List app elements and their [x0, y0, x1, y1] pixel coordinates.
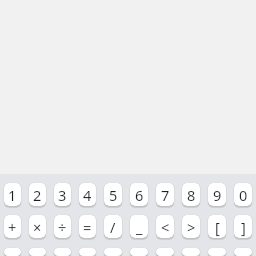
staticText: 5 [109, 185, 118, 205]
staticText: 7 [161, 185, 170, 205]
staticText: 6 [135, 185, 144, 205]
button[interactable] [208, 248, 226, 256]
staticText: ÷ [58, 217, 67, 237]
staticText: × [33, 217, 42, 237]
button[interactable] [182, 248, 200, 256]
button[interactable] [79, 248, 96, 256]
staticText: [ [215, 217, 220, 237]
button[interactable]: 3 [54, 183, 71, 206]
staticText: < [161, 217, 170, 237]
button[interactable]: 1 [4, 183, 21, 206]
button[interactable] [54, 248, 71, 256]
button[interactable] [234, 248, 252, 256]
button[interactable]: 9 [208, 183, 226, 206]
button[interactable]: ÷ [54, 215, 71, 238]
button[interactable] [29, 248, 46, 256]
button[interactable]: [ [208, 215, 226, 238]
staticText: 0 [239, 185, 248, 205]
button[interactable]: 5 [104, 183, 122, 206]
staticText: 9 [213, 185, 222, 205]
button[interactable]: 4 [79, 183, 96, 206]
button[interactable] [4, 248, 21, 256]
button[interactable]: < [156, 215, 174, 238]
staticText: ] [241, 217, 246, 237]
button[interactable]: 6 [130, 183, 148, 206]
button[interactable] [156, 248, 174, 256]
button[interactable]: + [4, 215, 21, 238]
staticText: 2 [33, 185, 42, 205]
button[interactable]: ] [234, 215, 252, 238]
button[interactable]: / [104, 215, 122, 238]
staticText: 1 [8, 185, 17, 205]
button[interactable]: 2 [29, 183, 46, 206]
staticText: 4 [83, 185, 92, 205]
button[interactable]: > [182, 215, 200, 238]
staticText: > [187, 217, 196, 237]
staticText: + [8, 217, 17, 237]
button[interactable]: 0 [234, 183, 252, 206]
button[interactable]: 7 [156, 183, 174, 206]
button[interactable]: × [29, 215, 46, 238]
staticText: 8 [187, 185, 196, 205]
staticText: / [110, 217, 116, 237]
button[interactable]: 8 [182, 183, 200, 206]
button[interactable] [104, 248, 122, 256]
button[interactable]: _ [130, 215, 148, 238]
staticText: 3 [58, 185, 67, 205]
staticText: _ [136, 217, 143, 237]
button[interactable] [130, 248, 148, 256]
button[interactable]: = [79, 215, 96, 238]
staticText: = [83, 217, 92, 237]
